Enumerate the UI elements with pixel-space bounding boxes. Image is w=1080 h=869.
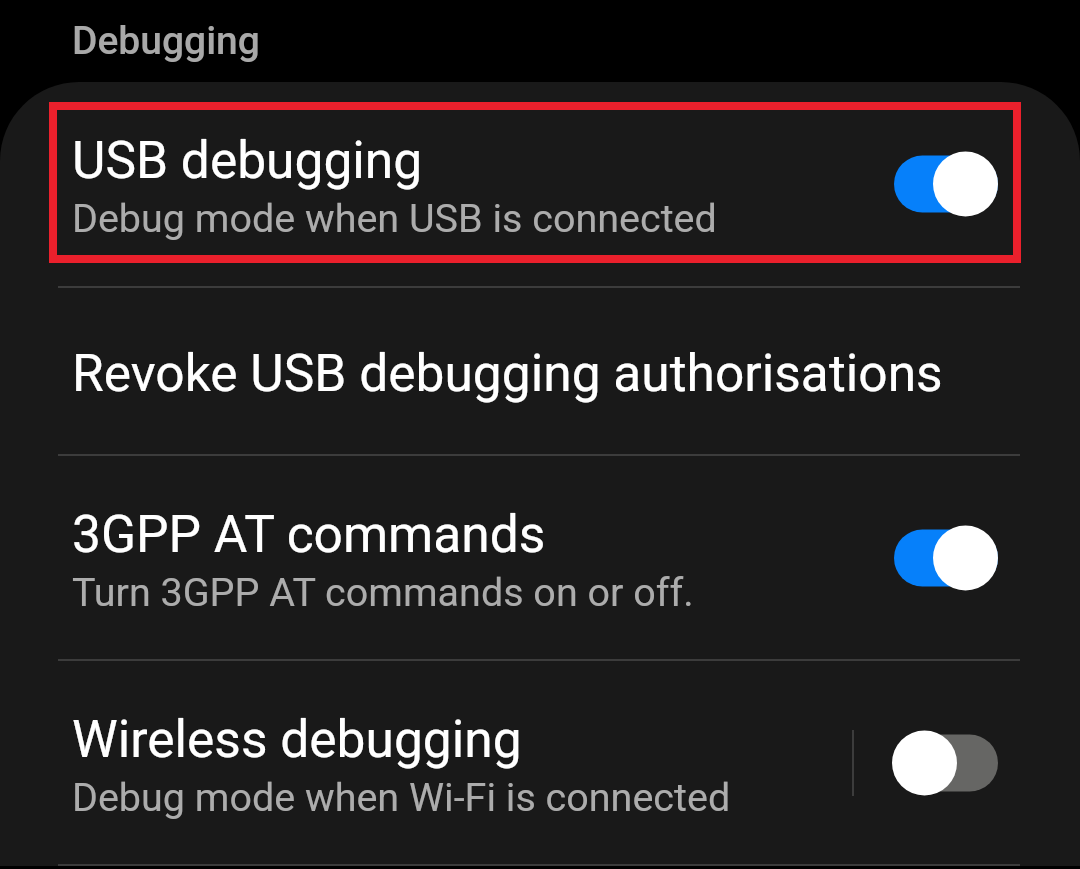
button[interactable]: Wireless debugging switch <box>894 728 1000 798</box>
staticText: 3GPP AT commands <box>72 504 546 564</box>
staticText: Revoke USB debugging authorisations <box>72 343 943 403</box>
button[interactable]: USB debugging switch <box>894 149 1000 219</box>
button[interactable]: 3GPP AT commands <box>0 456 1080 659</box>
staticText: Turn 3GPP AT commands on or off. <box>72 569 694 615</box>
staticText: Debug mode when Wi-Fi is connected <box>72 774 731 820</box>
button[interactable]: Wireless debugging <box>0 661 852 864</box>
staticText: Debugging <box>72 18 260 64</box>
staticText: Wireless debugging <box>72 709 522 769</box>
button[interactable]: Revoke USB debugging authorisations <box>0 288 1080 454</box>
staticText: USB debugging <box>72 130 423 190</box>
button[interactable]: 3GPP AT commands switch <box>894 523 1000 593</box>
staticText: Debug mode when USB is connected <box>72 195 717 241</box>
button[interactable]: USB debugging <box>0 82 1080 286</box>
